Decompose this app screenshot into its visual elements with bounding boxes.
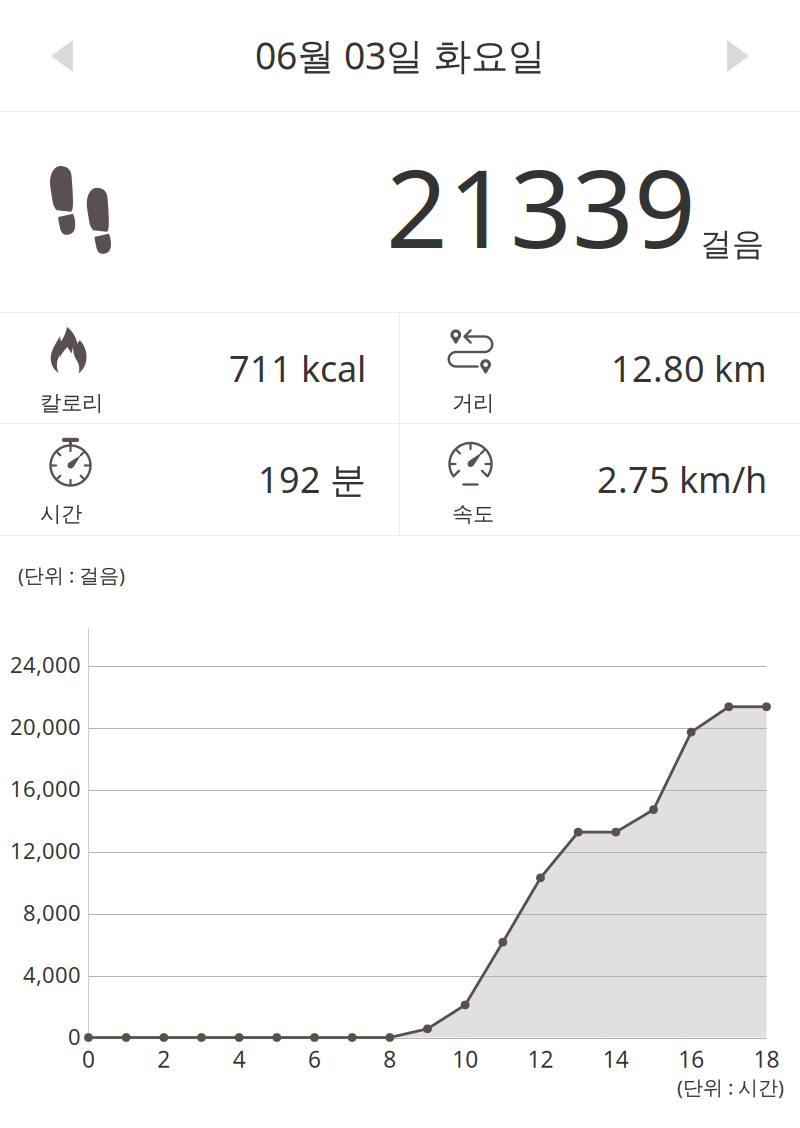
- button[interactable]: Previous day: [6, 0, 118, 111]
- staticText: 4,000: [23, 959, 81, 989]
- staticText: 21339: [386, 132, 696, 280]
- staticText: 2: [157, 1044, 170, 1074]
- staticText: (단위 : 시간): [677, 1073, 784, 1101]
- staticText: 16,000: [10, 773, 81, 803]
- staticText: 0: [82, 1044, 95, 1074]
- staticText: 거리: [452, 390, 494, 416]
- staticText: 14: [603, 1044, 629, 1074]
- staticText: 20,000: [10, 711, 81, 741]
- staticText: 10: [452, 1044, 478, 1074]
- staticText: 18: [753, 1044, 779, 1074]
- staticText: 시간: [40, 501, 82, 527]
- staticText: 8,000: [23, 897, 81, 927]
- staticText: 16: [678, 1044, 704, 1074]
- staticText: 12.80 km: [611, 343, 767, 392]
- staticText: 칼로리: [40, 390, 103, 416]
- staticText: 12,000: [10, 835, 81, 865]
- staticText: 0: [68, 1021, 81, 1051]
- staticText: 속도: [452, 501, 494, 527]
- staticText: 06월 03일 화요일: [255, 30, 545, 80]
- staticText: 8: [383, 1044, 396, 1074]
- staticText: 192 분: [258, 454, 366, 503]
- staticText: (단위 : 걸음): [18, 561, 125, 589]
- button[interactable]: 06월 03일 화요일: [200, 0, 600, 110]
- staticText: 6: [308, 1044, 321, 1074]
- staticText: 711 kcal: [229, 343, 366, 392]
- staticText: 걸음: [700, 224, 764, 264]
- button[interactable]: Next day: [682, 0, 794, 111]
- staticText: 4: [233, 1044, 246, 1074]
- staticText: 2.75 km/h: [597, 454, 767, 503]
- staticText: 12: [527, 1044, 553, 1074]
- staticText: 24,000: [10, 649, 81, 679]
